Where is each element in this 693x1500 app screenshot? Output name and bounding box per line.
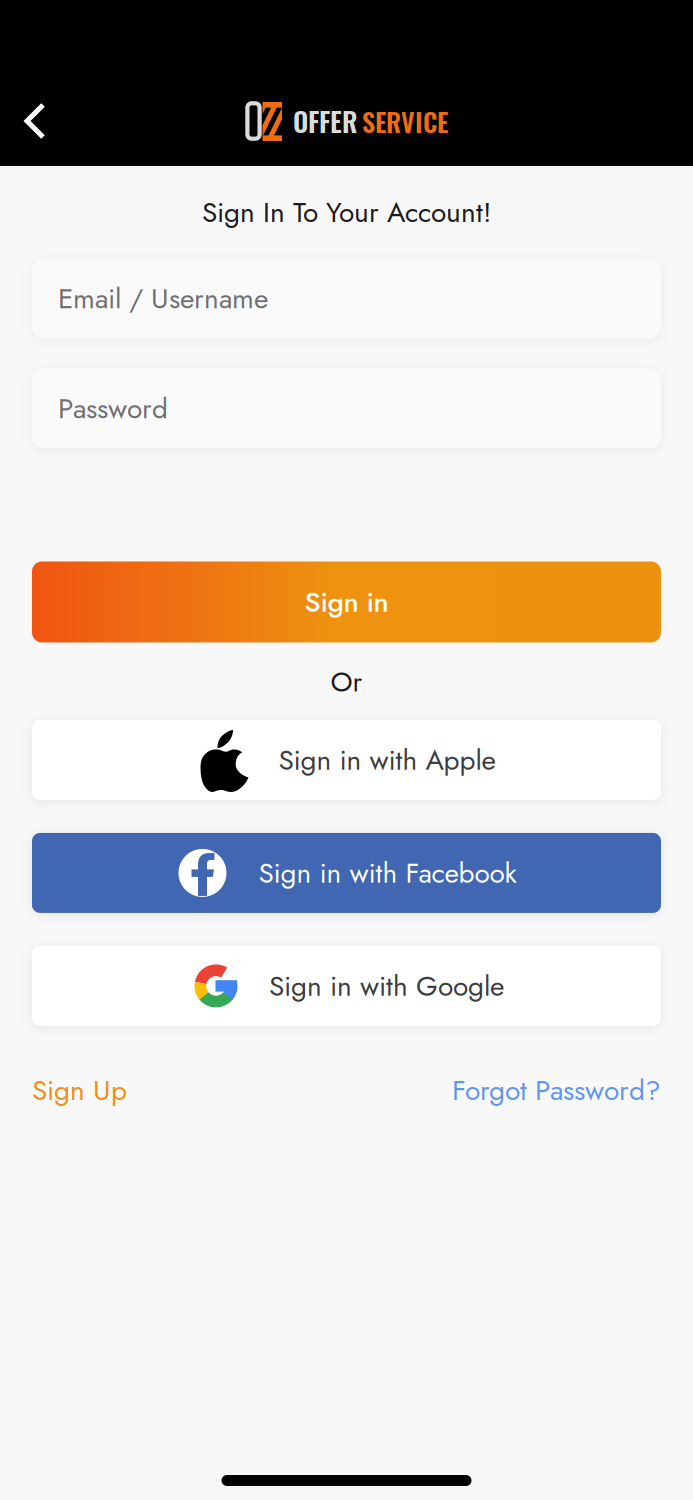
staticText: Sign in xyxy=(304,582,388,622)
staticText: Sign Up xyxy=(32,1070,127,1110)
staticText: Sign In To Your Account! xyxy=(202,192,491,232)
staticText: Sign in with Facebook xyxy=(258,853,516,893)
staticText: Password xyxy=(58,388,168,429)
staticText: Sign in with Google xyxy=(269,966,504,1006)
staticText: Sign in with Apple xyxy=(278,740,495,780)
button[interactable]: Back xyxy=(7,93,63,149)
button[interactable]: Sign in xyxy=(32,561,661,642)
staticText: SERVICE xyxy=(362,102,448,140)
staticText: Forgot Password? xyxy=(452,1070,661,1110)
staticText: Or xyxy=(330,661,362,702)
button[interactable]: Sign in with Apple xyxy=(32,720,661,800)
staticText: OFFER xyxy=(293,101,358,141)
button[interactable]: Sign in with Google xyxy=(32,946,661,1026)
staticText: Email / Username xyxy=(58,278,268,319)
button[interactable]: Forgot Password? xyxy=(452,1070,661,1110)
button[interactable]: Sign Up xyxy=(32,1070,127,1110)
button[interactable]: Sign in with Facebook xyxy=(32,833,661,913)
